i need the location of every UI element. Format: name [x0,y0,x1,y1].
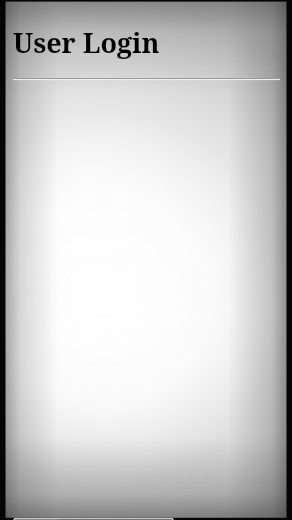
staticText: User Login [13,24,160,61]
